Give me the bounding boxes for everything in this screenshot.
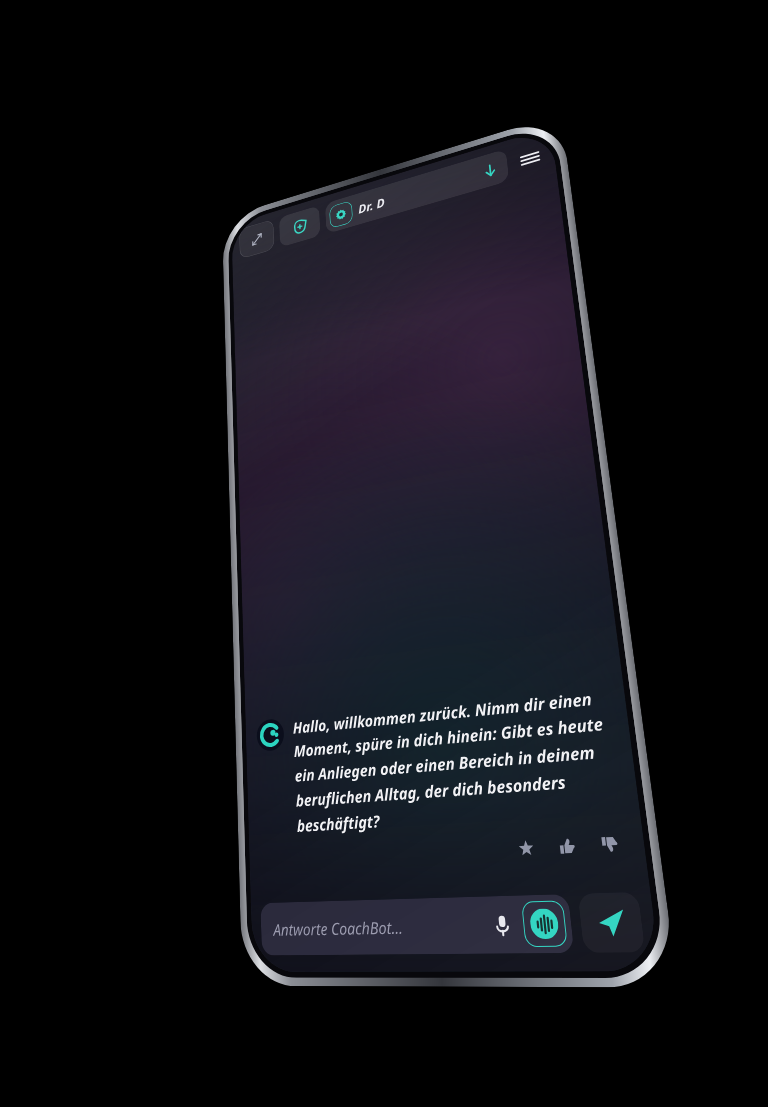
button[interactable]: Like bbox=[552, 831, 583, 862]
button[interactable]: Send bbox=[577, 892, 646, 953]
button[interactable]: Favourite bbox=[511, 833, 541, 863]
staticText: Dr. D bbox=[358, 194, 385, 217]
button[interactable]: Hallo, willkommen zurück. Nimm dir einen… bbox=[256, 685, 626, 874]
button[interactable]: Scroll to latest bbox=[475, 154, 504, 186]
button[interactable]: New topic bbox=[279, 205, 321, 248]
button[interactable]: Voice input bbox=[485, 907, 519, 942]
staticText: Hallo, willkommen zurück. Nimm dir einen… bbox=[292, 685, 621, 836]
button[interactable]: Expand bbox=[239, 219, 275, 259]
staticText: Antworte CoachBot... bbox=[273, 916, 404, 940]
button[interactable]: Dr. D bbox=[325, 149, 509, 234]
button[interactable]: Live voice conversation bbox=[521, 900, 568, 947]
button[interactable]: Antworte CoachBot... bbox=[260, 894, 574, 956]
button[interactable]: Dislike bbox=[594, 828, 626, 860]
button[interactable]: Menu bbox=[512, 139, 548, 177]
